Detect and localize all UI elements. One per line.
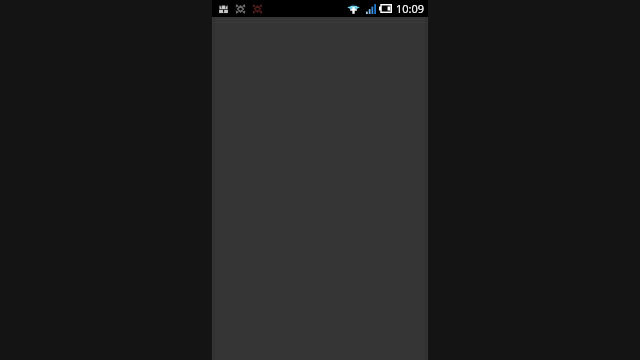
button[interactable]: Battery: [379, 4, 392, 13]
button[interactable]: 10:09: [396, 1, 425, 16]
button[interactable]: Wi-Fi connected: [347, 3, 360, 14]
button[interactable]: Sync active: [235, 3, 246, 15]
button[interactable]: Alert: [252, 3, 263, 15]
button[interactable]: Notification: [218, 3, 229, 15]
button[interactable]: Status bar: [212, 0, 428, 17]
button[interactable]: Mobile signal: [366, 4, 376, 14]
